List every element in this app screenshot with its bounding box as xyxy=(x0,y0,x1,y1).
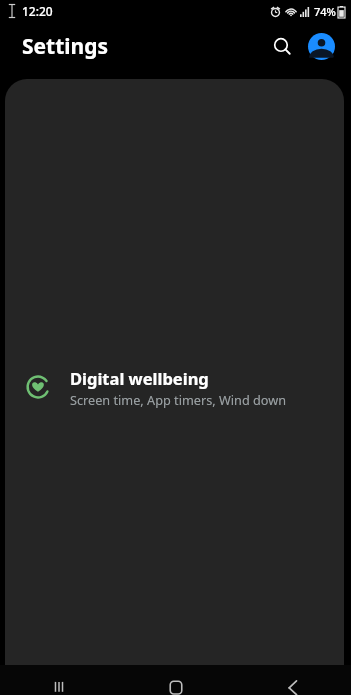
button[interactable]: Account xyxy=(304,29,338,63)
button[interactable]: Back xyxy=(234,665,351,695)
staticText: Digital wellbeing xyxy=(70,367,209,389)
staticText: Settings xyxy=(22,32,109,61)
button[interactable]: Recents xyxy=(0,665,117,695)
button[interactable]: Home xyxy=(117,665,234,695)
button[interactable]: Search xyxy=(265,29,299,63)
staticText: 74% xyxy=(314,4,336,19)
staticText: 12:20 xyxy=(22,3,53,19)
button[interactable]: Digital wellbeing xyxy=(5,79,344,695)
staticText: Screen time, App timers, Wind down xyxy=(70,391,287,408)
